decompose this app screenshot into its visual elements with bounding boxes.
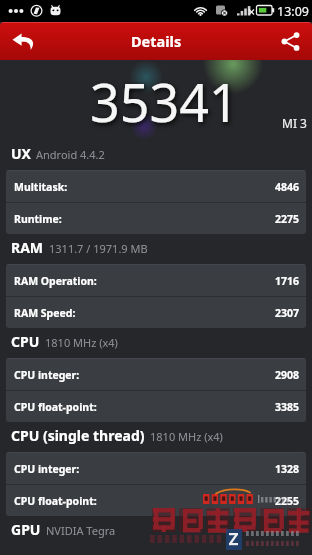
staticText: MI 3 xyxy=(282,115,307,131)
staticText: 4846 xyxy=(275,180,300,194)
button[interactable]: CPU integer: xyxy=(6,453,306,484)
staticText: RAM Operation: xyxy=(14,274,97,288)
staticText: CPU float-point: xyxy=(14,400,97,414)
staticText: Runtime: xyxy=(14,212,62,226)
button[interactable]: CPU float-point: xyxy=(6,391,306,422)
staticText: GPU xyxy=(11,520,41,539)
staticText: 2307 xyxy=(275,306,300,320)
button[interactable]: RAM Operation: xyxy=(6,265,306,296)
staticText: 1716 xyxy=(275,274,300,288)
staticText: CPU float-point: xyxy=(14,494,97,508)
staticText: CPU (single thread) xyxy=(11,426,145,445)
staticText: Details xyxy=(131,31,182,51)
button[interactable]: CPU float-point: xyxy=(6,485,306,516)
staticText: RAM xyxy=(11,238,44,257)
staticText: CPU integer: xyxy=(14,368,80,382)
staticText: 3385 xyxy=(275,400,300,414)
staticText: 1810 MHz (x4) xyxy=(150,429,223,444)
staticText: 1328 xyxy=(275,462,300,476)
staticText: 2255 xyxy=(275,494,300,508)
staticText: Multitask: xyxy=(14,180,68,194)
staticText: 2908 xyxy=(275,368,300,382)
button[interactable]: RAM Speed: xyxy=(6,297,306,328)
button[interactable]: Multitask: xyxy=(6,171,306,202)
staticText: 35341 xyxy=(90,66,239,137)
button[interactable]: Share xyxy=(268,22,312,60)
staticText: 13:09 xyxy=(277,3,309,20)
staticText: 1311.7 / 1971.9 MB xyxy=(49,241,148,256)
button[interactable]: Back xyxy=(0,22,48,60)
staticText: 2275 xyxy=(275,212,300,226)
staticText: UX xyxy=(11,144,31,163)
staticText: Android 4.4.2 xyxy=(36,147,105,162)
staticText: CPU integer: xyxy=(14,462,80,476)
staticText: CPU xyxy=(11,332,40,351)
button[interactable]: Runtime: xyxy=(6,203,306,234)
button[interactable]: CPU integer: xyxy=(6,359,306,390)
staticText: RAM Speed: xyxy=(14,306,76,320)
staticText: 1810 MHz (x4) xyxy=(45,335,118,350)
staticText: NVIDIA Tegra xyxy=(46,523,116,538)
